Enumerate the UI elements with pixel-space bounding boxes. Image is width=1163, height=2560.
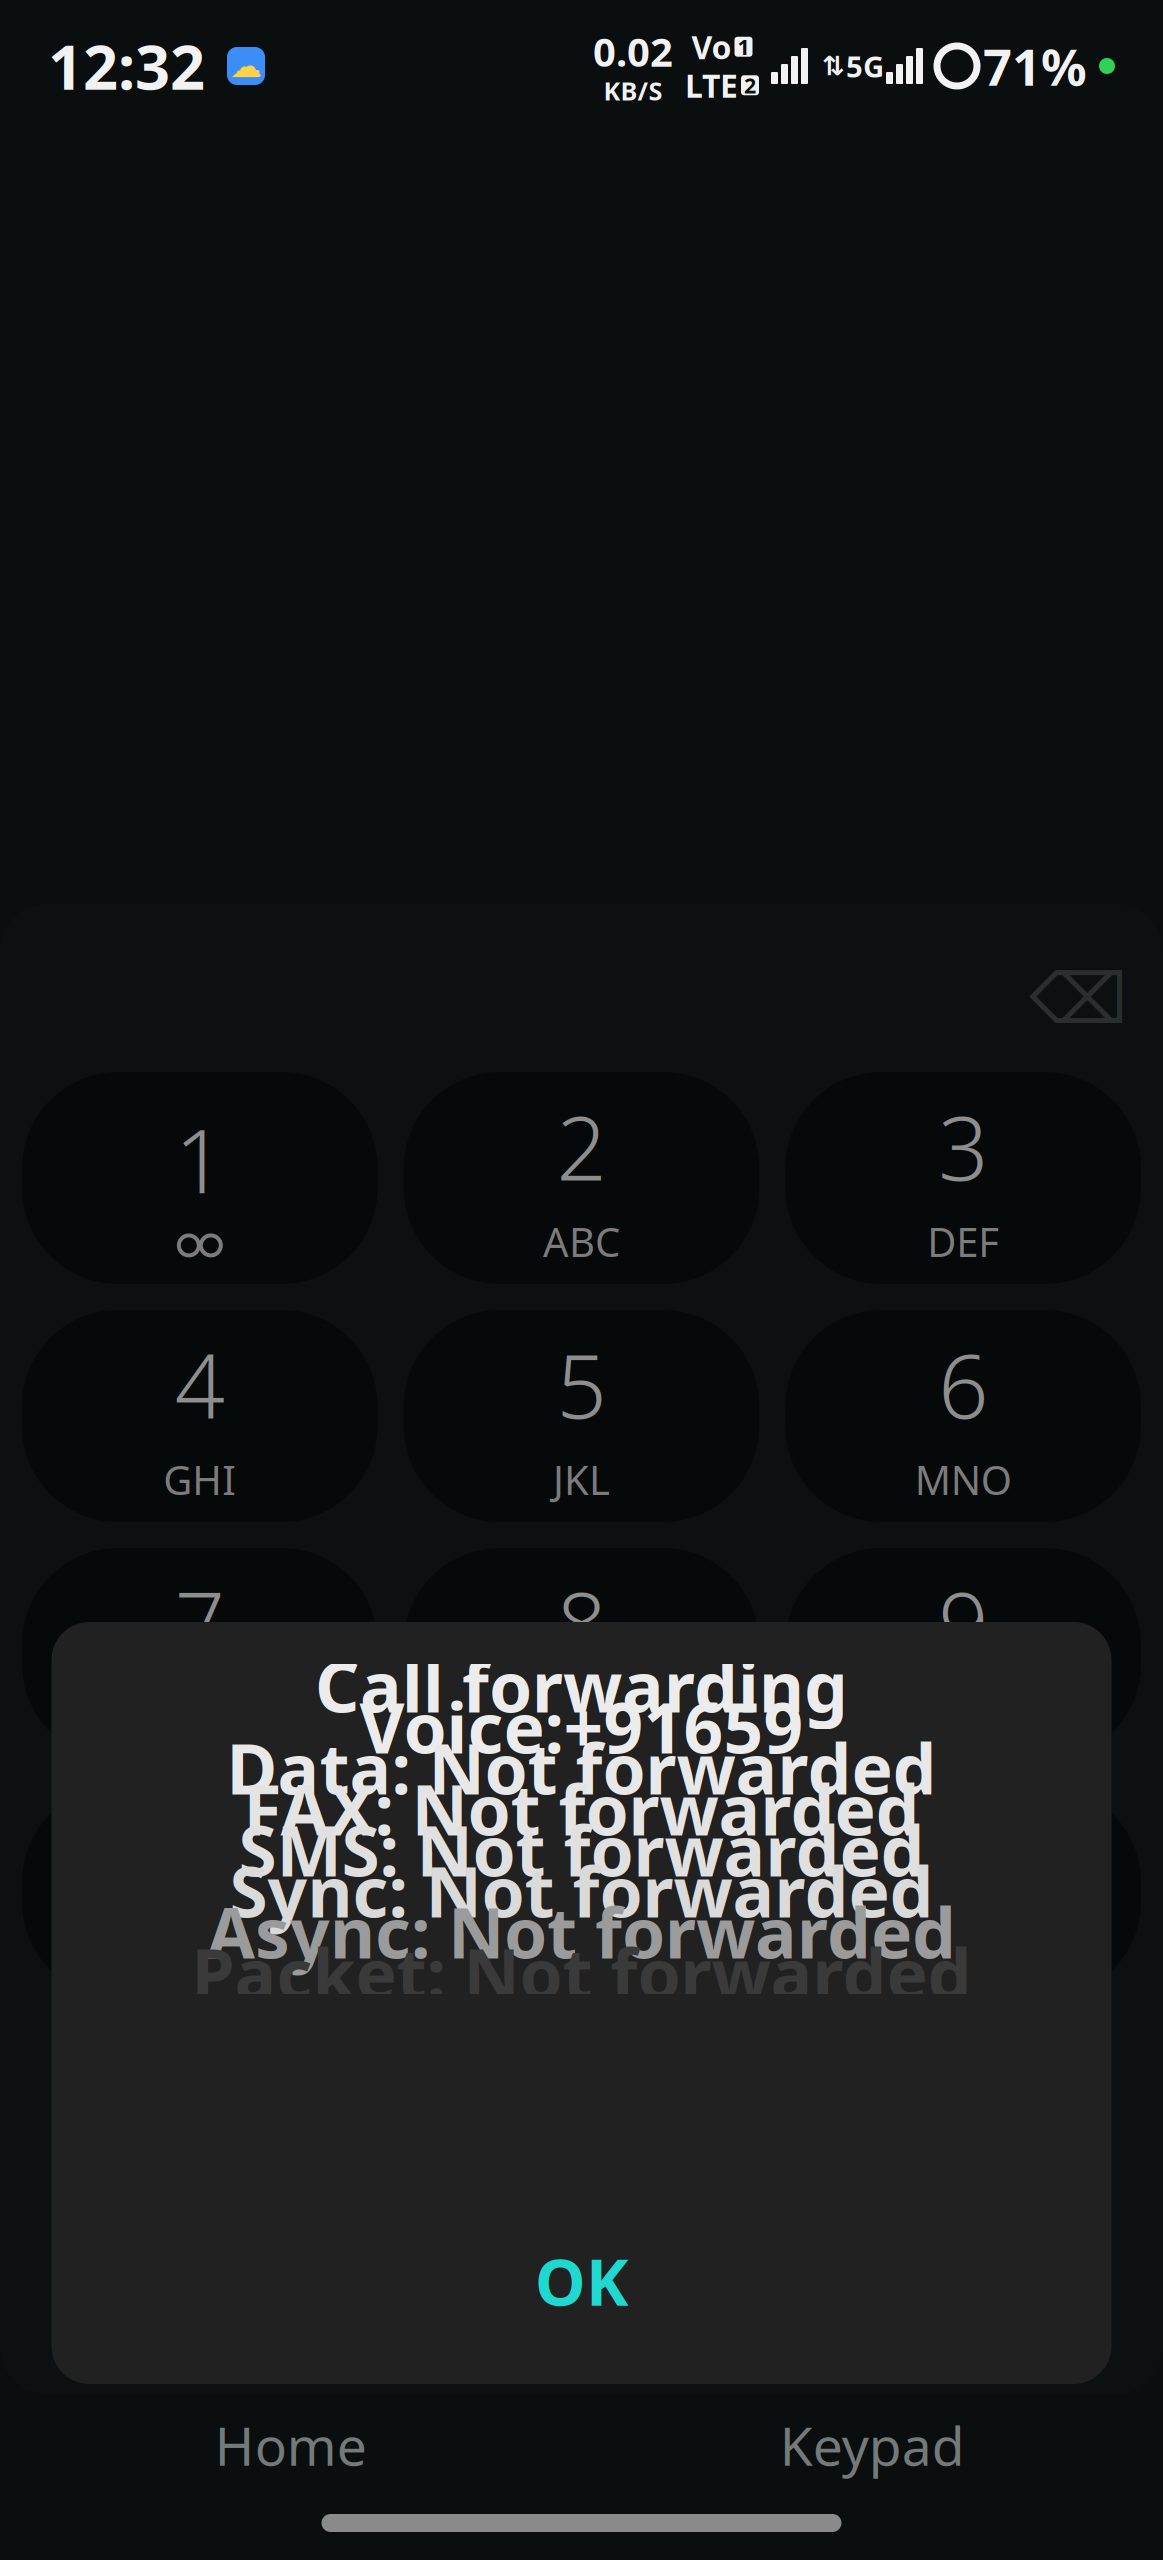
staticText: 12:32 [48,25,205,107]
staticText: TUV [544,1691,619,1744]
button[interactable]: 8 [404,1548,759,1760]
staticText: 5 [556,1326,606,1443]
button[interactable]: # [785,1786,1141,1998]
staticText: ⇅ [822,51,844,81]
staticText: Home [215,2410,367,2480]
staticText: 8 [556,1564,606,1681]
staticText: DEF [927,1215,999,1268]
staticText: JKL [553,1453,610,1506]
button[interactable]: OK [51,2226,1111,2336]
staticText: ☁ [230,48,262,84]
staticText: 7 [175,1564,225,1681]
staticText: + [570,1929,593,1982]
staticText: Sync: Not forwarded [229,1844,933,1937]
button[interactable]: Delete [1023,944,1133,1054]
staticText: OK [535,2238,628,2323]
button[interactable]: 2 [404,1072,759,1284]
staticText: 0 [556,1802,606,1919]
button[interactable]: 5 [404,1310,759,1522]
staticText: 3 [938,1088,988,1205]
staticText: Async: Not forwarded [207,1885,956,1978]
button[interactable]: 4 [22,1310,378,1522]
staticText: Keypad [780,2410,965,2480]
staticText: MNO [915,1453,1012,1506]
staticText: 1 [737,33,749,61]
button[interactable]: Home [0,2402,581,2488]
staticText: 2 [556,1088,606,1205]
button[interactable]: 0 [404,1786,759,1998]
staticText: WXYZ [910,1691,1016,1744]
staticText: ⌫ [1029,960,1127,1038]
button[interactable]: Keypad [581,2402,1163,2488]
button[interactable]: 6 [785,1310,1141,1522]
staticText: Packet: Not forwarded [191,1926,971,2019]
staticText: 0.02 [593,25,673,78]
staticText: Data: Not forwarded [226,1721,936,1814]
staticText: 9 [938,1564,988,1681]
staticText: ✱ [163,1825,237,1925]
staticText: 2 [744,71,756,99]
button[interactable]: ✱ [22,1786,378,1998]
button[interactable]: 9 [785,1548,1141,1760]
staticText: KB/S [603,74,662,107]
staticText: Vo [691,25,731,68]
staticText: 4 [175,1326,225,1443]
staticText: # [935,1817,992,1933]
staticText: 5G [846,46,884,85]
staticText: ABC [543,1215,620,1268]
staticText: 71% [983,32,1087,100]
staticText: GHI [163,1453,236,1506]
button[interactable]: 1 [22,1072,378,1284]
button[interactable]: 7 [22,1548,378,1760]
staticText: FAX: Not forwarded [243,1762,919,1855]
staticText: LTE [685,64,738,106]
staticText: 1 [175,1101,225,1217]
staticText: 6 [938,1326,988,1443]
staticText: Call forwarding [315,1639,848,1732]
staticText: SMS: Not forwarded [238,1803,924,1896]
button[interactable]: 3 [785,1072,1141,1284]
staticText: Voice:+91659 [359,1680,803,1773]
